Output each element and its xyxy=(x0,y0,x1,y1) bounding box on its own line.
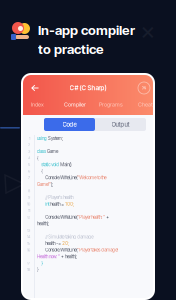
staticText: System; xyxy=(48,135,63,141)
staticText: // Simulate taking damage xyxy=(45,234,93,240)
button[interactable]: Programs xyxy=(99,101,123,108)
button[interactable]: Progress xyxy=(138,82,150,94)
staticText: ); xyxy=(51,181,53,187)
staticText: Console.WriteLine( xyxy=(45,247,77,253)
staticText: 15 xyxy=(27,241,30,246)
staticText: C# (C Sharp) xyxy=(69,84,106,92)
staticText: to practice xyxy=(38,41,104,57)
button[interactable]: Cheatsheet xyxy=(138,101,167,108)
staticText: Compiler xyxy=(64,101,86,108)
staticText: static void xyxy=(41,162,60,167)
staticText: + health); xyxy=(60,254,77,259)
staticText: 10 xyxy=(27,202,30,206)
staticText: } xyxy=(41,260,43,266)
staticText: using xyxy=(37,135,48,141)
button[interactable]: Output xyxy=(95,118,146,131)
staticText: { xyxy=(41,168,43,174)
staticText: health); xyxy=(37,221,49,226)
staticText: Output xyxy=(111,121,129,128)
staticText: Health now: " xyxy=(37,254,60,259)
staticText: Console.WriteLine( xyxy=(45,175,77,180)
staticText: "Player takes damage! xyxy=(77,247,118,253)
staticText: 18 xyxy=(27,267,30,272)
staticText: 9 xyxy=(28,195,30,200)
staticText: Console.WriteLine( xyxy=(45,214,77,220)
staticText: 11 xyxy=(28,208,30,213)
staticText: 6 xyxy=(28,169,30,173)
staticText: "Player health: " xyxy=(77,214,105,220)
staticText: 100; xyxy=(65,201,74,207)
staticText: + xyxy=(105,214,109,220)
staticText: 12 xyxy=(27,215,30,219)
staticText: 7 xyxy=(28,175,30,180)
staticText: 16 xyxy=(27,248,30,252)
staticText: { xyxy=(37,155,39,161)
staticText: } xyxy=(37,267,39,272)
button[interactable]: Back xyxy=(30,83,40,93)
staticText: 8 xyxy=(28,188,30,193)
staticText: 20; xyxy=(62,241,69,246)
button[interactable]: Compiler xyxy=(64,101,86,108)
staticText: // Player's health xyxy=(45,195,73,200)
button[interactable]: Code xyxy=(44,118,95,131)
staticText: Code xyxy=(62,121,76,128)
staticText: 2 xyxy=(28,142,30,147)
staticText: 4 xyxy=(28,156,30,160)
staticText: 0% xyxy=(141,86,146,90)
staticText: int xyxy=(45,201,50,207)
staticText: 17 xyxy=(27,261,30,265)
staticText: Index xyxy=(31,101,44,108)
staticText: 13 xyxy=(27,228,30,233)
staticText: Game xyxy=(47,149,58,154)
staticText: Main() xyxy=(60,162,71,167)
staticText: Game!" xyxy=(37,181,51,187)
staticText: health -= xyxy=(45,241,62,246)
staticText: "Welcome to the xyxy=(77,175,106,180)
staticText: 1 xyxy=(29,136,30,141)
staticText: 3 xyxy=(28,149,30,154)
staticText: 5 xyxy=(28,162,30,167)
button[interactable]: Index xyxy=(31,101,44,108)
staticText: Programs xyxy=(99,101,123,108)
staticText: Cheatsheet xyxy=(138,101,167,108)
staticText: class xyxy=(37,149,47,154)
staticText: ✕ xyxy=(140,22,156,44)
staticText: In-app compiler xyxy=(38,22,135,38)
staticText: 14 xyxy=(27,234,30,239)
staticText: health = xyxy=(50,201,65,207)
